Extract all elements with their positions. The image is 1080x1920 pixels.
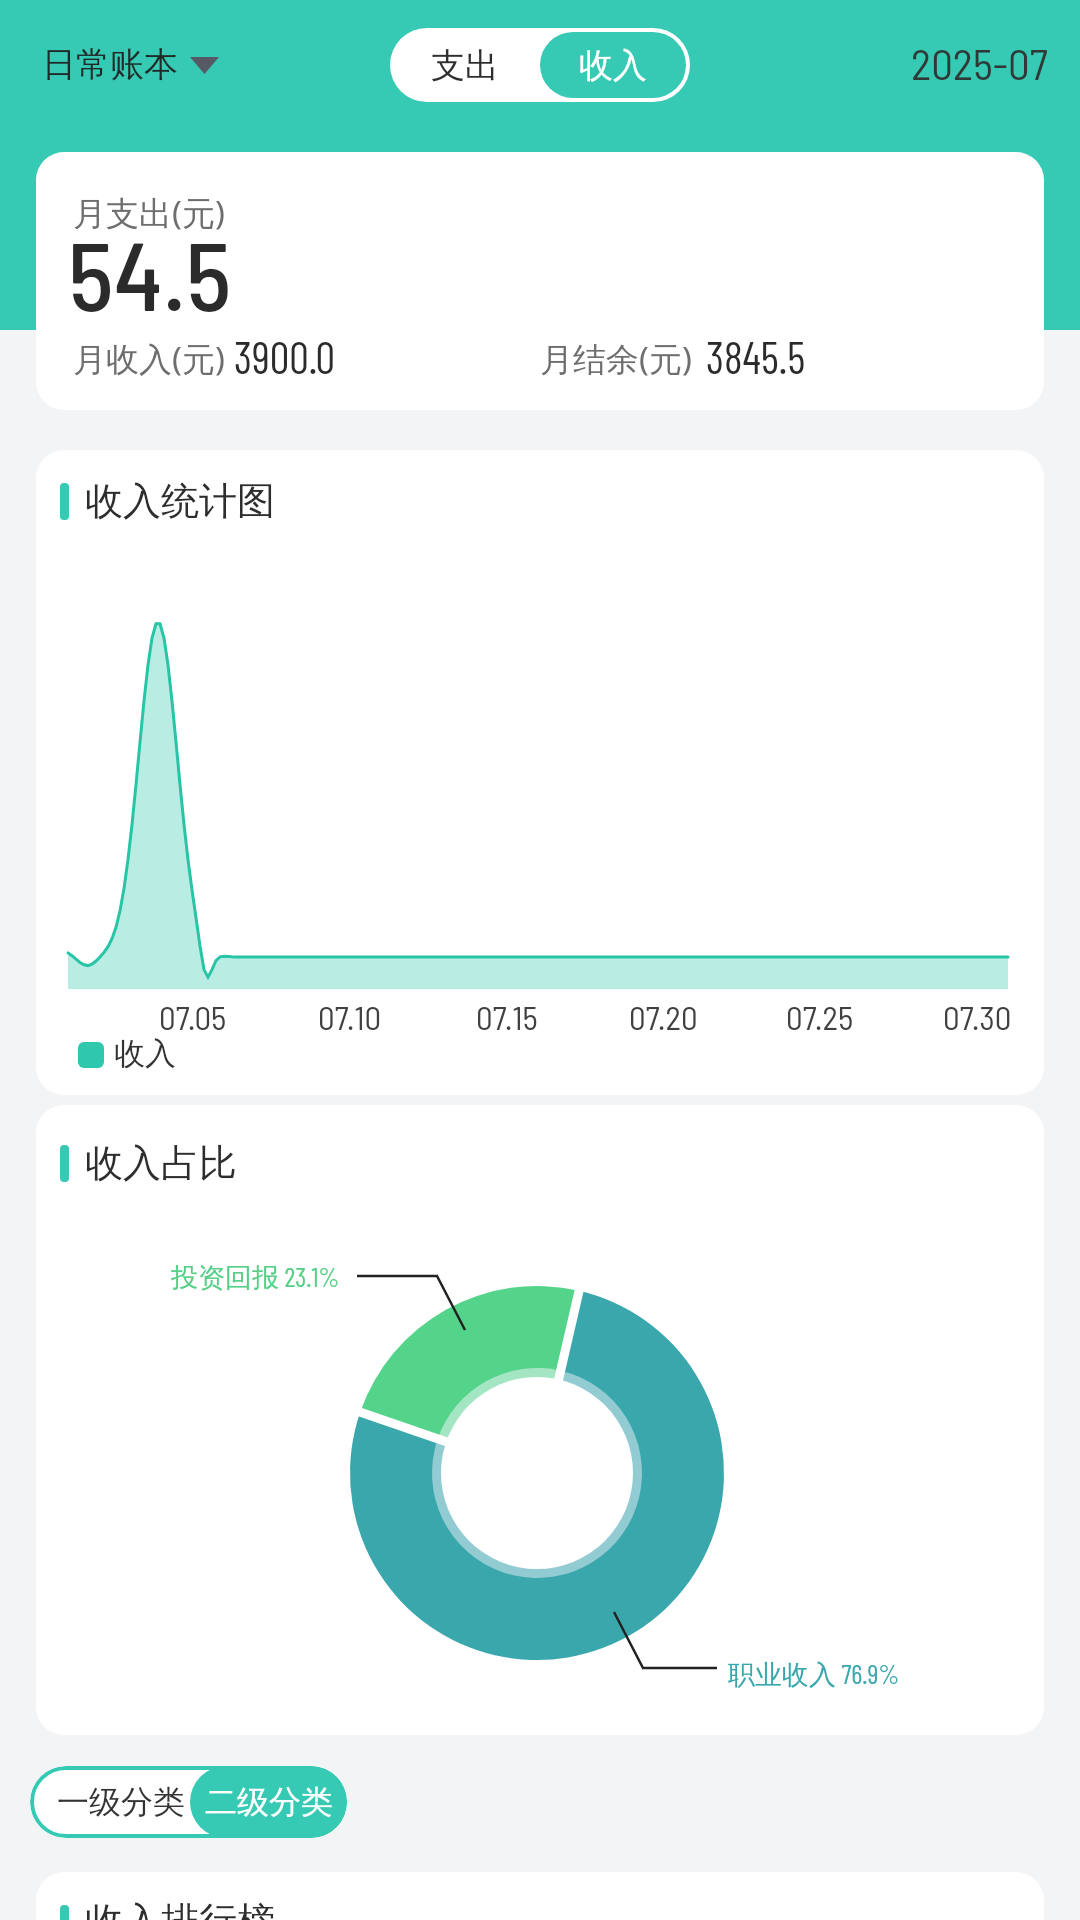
button[interactable]: 收入: [540, 32, 686, 98]
staticText: 07.25: [786, 997, 854, 1037]
staticText: 二级分类: [205, 1782, 333, 1822]
staticText: 一级分类: [57, 1782, 185, 1822]
staticText: 07.15: [476, 997, 538, 1037]
staticText: 收入占比: [85, 1139, 237, 1187]
staticText: 投资回报 23.1%: [171, 1260, 340, 1295]
staticText: 3900.0: [234, 330, 336, 383]
button[interactable]: 一级分类: [41, 1766, 201, 1838]
staticText: 07.10: [318, 997, 382, 1037]
staticText: 收入统计图: [85, 477, 275, 525]
staticText: 月收入(元): [73, 336, 225, 381]
staticText: 2025-07: [911, 37, 1048, 89]
staticText: 职业收入 76.9%: [728, 1657, 900, 1692]
staticText: 收入排行榜: [85, 1897, 275, 1920]
staticText: 07.05: [159, 997, 227, 1037]
staticText: 日常账本: [42, 43, 178, 86]
staticText: 支出: [431, 44, 499, 87]
staticText: 3845.5: [706, 330, 806, 383]
staticText: 月结余(元): [540, 336, 692, 381]
button[interactable]: 支出: [390, 28, 540, 102]
button[interactable]: 2025-07: [850, 36, 1050, 90]
staticText: 收入: [579, 44, 647, 87]
staticText: 月支出(元): [73, 190, 225, 235]
staticText: 07.20: [629, 997, 698, 1037]
button[interactable]: 日常账本: [40, 38, 220, 94]
staticText: 07.30: [943, 997, 1012, 1037]
staticText: 收入: [114, 1034, 176, 1073]
button[interactable]: 二级分类: [190, 1766, 347, 1838]
staticText: 54.5: [68, 214, 232, 330]
